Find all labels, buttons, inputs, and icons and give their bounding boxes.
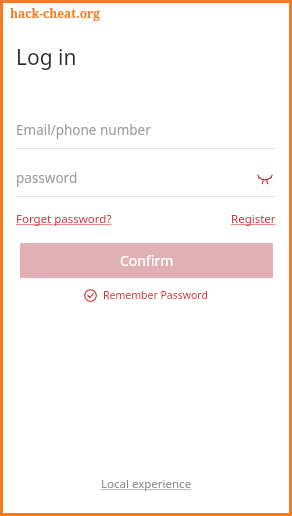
staticText: Local experience <box>101 476 192 492</box>
staticText: Confirm <box>120 251 174 270</box>
staticText: Remember Password <box>103 288 208 302</box>
staticText: Log in <box>16 43 77 72</box>
staticText: Email/phone number <box>16 121 151 139</box>
button[interactable]: Forget password? <box>16 211 112 227</box>
button[interactable]: Register <box>231 211 276 227</box>
button[interactable]: Remember Password <box>80 286 212 304</box>
staticText: Forget password? <box>16 211 112 227</box>
staticText: password <box>16 169 78 187</box>
button[interactable]: password <box>16 167 276 189</box>
button[interactable]: Show password <box>254 167 276 189</box>
staticText: Register <box>231 211 276 227</box>
button[interactable]: Local experience <box>95 473 198 495</box>
staticText: hack-cheat.org <box>10 5 101 21</box>
button[interactable]: Confirm <box>20 243 273 278</box>
button[interactable]: Email/phone number <box>3 121 289 149</box>
